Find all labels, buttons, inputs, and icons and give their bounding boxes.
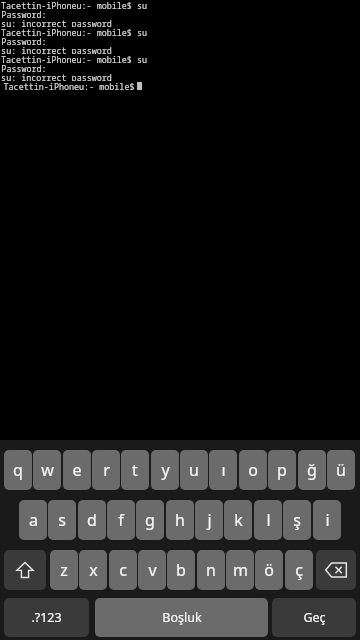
staticText: su: incorrect password — [1, 72, 112, 81]
staticText: m — [233, 559, 248, 581]
staticText: x — [89, 559, 98, 581]
button[interactable]: x — [79, 550, 107, 590]
button[interactable]: a — [19, 500, 47, 540]
staticText: u — [189, 459, 199, 481]
button[interactable]: d — [78, 500, 106, 540]
staticText: b — [176, 559, 186, 581]
staticText: h — [175, 509, 185, 531]
button[interactable]: c — [109, 550, 137, 590]
button[interactable]: h — [166, 500, 194, 540]
staticText: z — [60, 559, 68, 581]
button[interactable]: s — [48, 500, 76, 540]
staticText: Tacettin-iPhoneu:- mobile$ su — [1, 54, 147, 63]
button[interactable]: ğ — [298, 450, 326, 490]
staticText: Password: — [1, 36, 47, 45]
staticText: su: incorrect password — [1, 45, 112, 54]
staticText: i — [325, 509, 330, 531]
button[interactable]: v — [138, 550, 166, 590]
staticText: f — [118, 509, 124, 531]
button[interactable]: o — [239, 450, 267, 490]
staticText: v — [148, 559, 157, 581]
button[interactable]: ı — [209, 450, 237, 490]
button[interactable]: k — [224, 500, 252, 540]
staticText: w — [41, 459, 54, 481]
button[interactable]: n — [197, 550, 225, 590]
button[interactable]: g — [136, 500, 164, 540]
staticText: ı — [221, 459, 226, 481]
button[interactable]: b — [167, 550, 195, 590]
button[interactable]: u — [180, 450, 208, 490]
button[interactable]: ü — [327, 450, 355, 490]
staticText: g — [145, 509, 155, 531]
staticText: k — [234, 509, 243, 531]
button[interactable]: l — [254, 500, 282, 540]
staticText: q — [13, 459, 23, 481]
button[interactable]: t — [121, 450, 149, 490]
staticText: t — [132, 459, 138, 481]
staticText: j — [207, 509, 212, 531]
button[interactable]: m — [226, 550, 254, 590]
staticText: ğ — [307, 459, 317, 481]
button[interactable]: y — [151, 450, 179, 490]
button[interactable]: w — [33, 450, 61, 490]
button[interactable]: ç — [285, 550, 313, 590]
button[interactable]: Boşluk — [95, 598, 268, 637]
staticText: Password: — [1, 63, 47, 72]
staticText: su: incorrect password — [1, 18, 112, 27]
staticText: ö — [264, 559, 274, 581]
staticText: Password: — [1, 9, 47, 18]
staticText: Tacettin-iPhoneu:- mobile$ su — [1, 27, 147, 36]
staticText: r — [103, 459, 110, 481]
button[interactable]: Backspace — [316, 550, 356, 590]
staticText: Geç — [303, 609, 326, 626]
staticText: d — [87, 509, 97, 531]
staticText: o — [248, 459, 258, 481]
staticText: ş — [293, 509, 301, 531]
staticText: l — [266, 509, 271, 531]
button[interactable]: ş — [283, 500, 311, 540]
button[interactable]: Geç — [272, 598, 356, 637]
staticText: s — [58, 509, 66, 531]
button[interactable]: .?123 — [4, 598, 89, 637]
button[interactable]: z — [50, 550, 78, 590]
staticText: ü — [336, 459, 346, 481]
staticText: Boşluk — [162, 609, 202, 626]
button[interactable]: i — [313, 500, 341, 540]
button[interactable]: Shift — [4, 550, 46, 590]
staticText: ç — [295, 559, 303, 581]
staticText: a — [29, 509, 38, 531]
staticText: Tacettin-iPhoneu:- mobile$ su — [1, 0, 147, 9]
staticText: .?123 — [31, 609, 62, 626]
button[interactable]: ö — [255, 550, 283, 590]
staticText: p — [277, 459, 287, 481]
staticText: n — [206, 559, 216, 581]
button[interactable]: e — [63, 450, 91, 490]
staticText: c — [119, 559, 127, 581]
staticText: y — [161, 459, 170, 481]
button[interactable]: p — [268, 450, 296, 490]
button[interactable]: r — [92, 450, 120, 490]
button[interactable]: q — [4, 450, 32, 490]
button[interactable]: f — [107, 500, 135, 540]
staticText: Tacettin-iPhoneu:- mobile$ — [1, 81, 137, 90]
button[interactable]: j — [195, 500, 223, 540]
staticText: e — [72, 459, 82, 481]
